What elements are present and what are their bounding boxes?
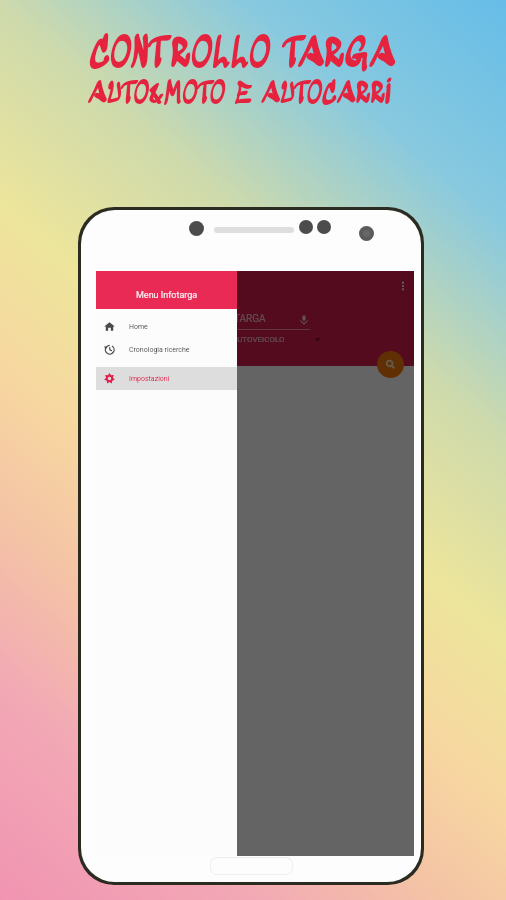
staticText: Home [129,323,148,331]
staticText: AUTO&MOTO E AUTOCARRI [0,77,492,113]
staticText: CONTROLLO TARGA [0,31,495,81]
button[interactable]: Menu Infotarga [96,271,237,309]
button[interactable]: Voice search [298,314,310,326]
staticText: TARGA [234,313,266,325]
staticText: Impostazioni [129,375,170,383]
staticText: Menu Infotarga [136,290,198,301]
button[interactable]: Cronologia ricerche [96,338,237,361]
button[interactable]: Search [377,351,404,378]
staticText: Cronologia ricerche [129,346,190,354]
button[interactable]: Home button [210,857,293,875]
button[interactable]: More options [392,275,414,297]
button[interactable]: Impostazioni [96,367,237,390]
button[interactable]: Home [96,315,237,338]
staticText: AUTOVEICOLO [232,335,285,344]
